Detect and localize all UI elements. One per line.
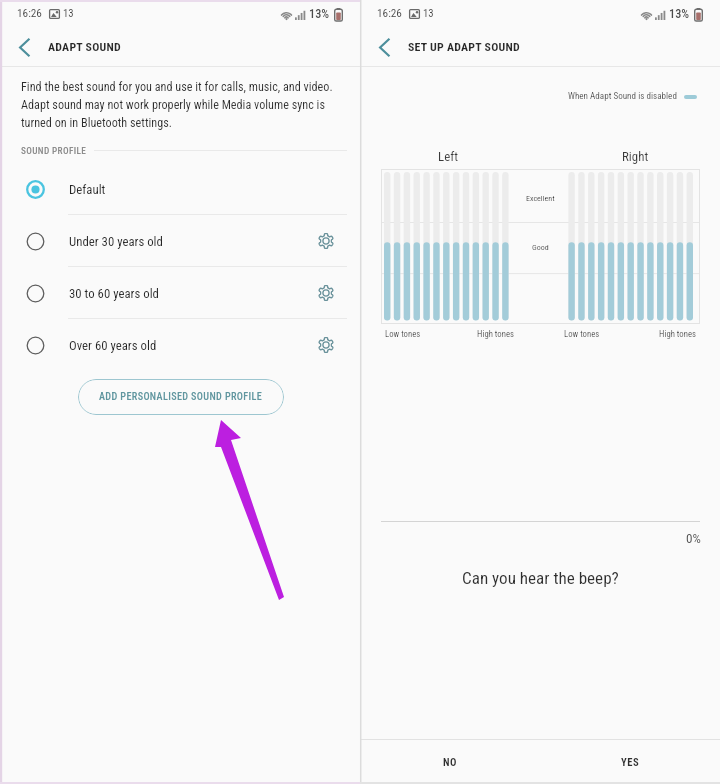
- staticText: Right: [622, 149, 649, 164]
- staticText: Can you hear the beep?: [462, 568, 619, 588]
- staticText: Left: [438, 149, 459, 164]
- staticText: NO: [443, 756, 457, 768]
- staticText: Under 30 years old: [69, 234, 163, 249]
- button[interactable]: Profile settings: [309, 328, 343, 362]
- staticText: 0%: [686, 531, 701, 546]
- button[interactable]: Profile settings: [309, 224, 343, 258]
- button[interactable]: Navigate up: [368, 31, 400, 63]
- button[interactable]: Navigate up: [8, 31, 40, 63]
- staticText: Excellent: [526, 194, 555, 203]
- button[interactable]: YES: [540, 740, 720, 784]
- staticText: YES: [621, 756, 640, 768]
- button[interactable]: 30 to 60 years old: [0, 267, 360, 319]
- staticText: ADAPT SOUND: [48, 40, 121, 54]
- button[interactable]: Under 30 years old: [0, 215, 360, 267]
- staticText: 13%: [309, 7, 330, 21]
- staticText: 13%: [669, 7, 690, 21]
- button[interactable]: Over 60 years old: [0, 319, 360, 371]
- button[interactable]: NO: [360, 740, 540, 784]
- staticText: 16:26: [17, 7, 42, 20]
- staticText: Find the best sound for you and use it f…: [21, 80, 350, 130]
- staticText: High tones: [477, 329, 514, 339]
- staticText: Over 60 years old: [69, 338, 157, 353]
- staticText: Low tones: [385, 329, 421, 339]
- button[interactable]: Profile settings: [309, 276, 343, 310]
- staticText: When Adapt Sound is disabled: [568, 91, 677, 102]
- staticText: Default: [69, 182, 106, 197]
- staticText: Good: [532, 243, 549, 252]
- button[interactable]: ADD PERSONALISED SOUND PROFILE: [78, 379, 284, 415]
- staticText: High tones: [659, 329, 696, 339]
- staticText: 13: [423, 7, 434, 20]
- staticText: 30 to 60 years old: [69, 286, 159, 301]
- staticText: 16:26: [377, 7, 402, 20]
- staticText: 13: [63, 7, 74, 20]
- staticText: ADD PERSONALISED SOUND PROFILE: [99, 391, 263, 403]
- staticText: SET UP ADAPT SOUND: [408, 40, 520, 54]
- staticText: Low tones: [564, 329, 600, 339]
- staticText: SOUND PROFILE: [21, 145, 87, 156]
- button[interactable]: Default: [0, 163, 360, 215]
